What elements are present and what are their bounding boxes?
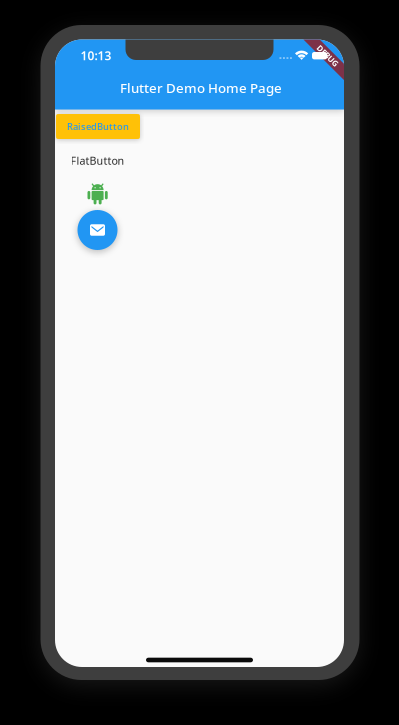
button[interactable]: FlatButton	[64, 148, 130, 172]
staticText: Flutter Demo Home Page	[120, 79, 282, 97]
button[interactable]: RaisedButton	[56, 114, 140, 139]
staticText: RaisedButton	[67, 120, 129, 133]
staticText: FlatButton	[70, 153, 124, 168]
button[interactable]: Compose mail	[77, 210, 117, 250]
staticText: DEBUG	[317, 44, 344, 55]
staticText: 10:13	[80, 48, 111, 64]
